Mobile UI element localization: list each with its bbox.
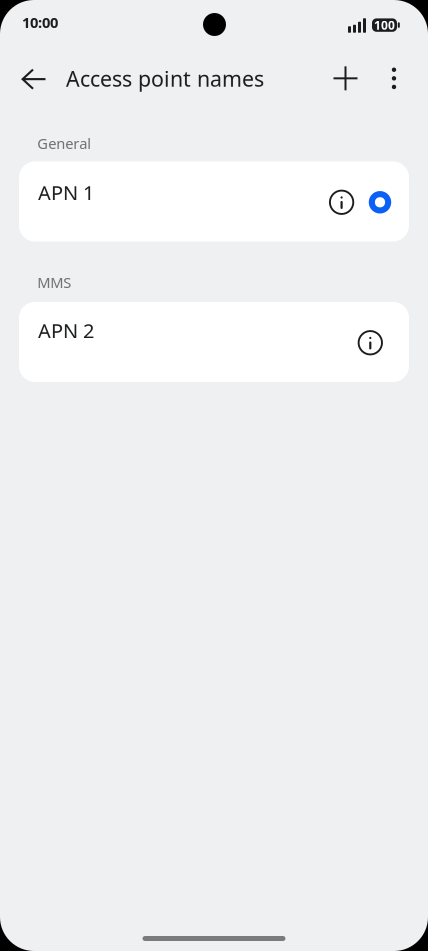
staticText: 100	[374, 17, 395, 33]
staticText: Access point names	[66, 64, 264, 92]
staticText: MMS	[37, 272, 71, 292]
button[interactable]: APN 2	[19, 302, 409, 382]
staticText: APN 2	[38, 317, 94, 344]
staticText: General	[37, 133, 91, 153]
button[interactable]: Edit APN 2	[348, 312, 392, 372]
button[interactable]: More options	[369, 54, 418, 102]
staticText: 10:00	[22, 12, 58, 32]
button[interactable]: Add APN	[321, 54, 369, 102]
button[interactable]: Edit APN 1	[319, 171, 363, 231]
button[interactable]: Back	[9, 54, 57, 102]
button[interactable]: APN 1 selected	[363, 171, 397, 231]
staticText: APN 1	[38, 179, 94, 206]
button[interactable]: APN 1	[19, 161, 409, 241]
